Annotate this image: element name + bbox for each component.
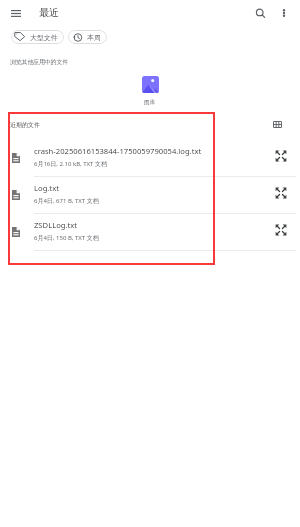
staticText: 大型文件 [30, 33, 58, 42]
button[interactable]: Search [250, 3, 270, 23]
staticText: crash-20250616153844-1750059790054.log.t… [34, 146, 234, 156]
staticText: 最近 [39, 6, 59, 19]
button[interactable]: Menu [11, 10, 21, 17]
button[interactable]: crash-20250616153844-1750059790054.log.t… [0, 140, 300, 177]
staticText: 6月16日, 2.10 kB, TXT 文档 [34, 160, 107, 168]
staticText: Log.txt [34, 183, 234, 193]
staticText: 6月4日, 150 B, TXT 文档 [34, 234, 99, 242]
button[interactable]: More options [274, 3, 294, 23]
staticText: 本周 [87, 33, 101, 42]
button[interactable]: Expand [273, 148, 289, 164]
button[interactable]: 大型文件 [11, 30, 64, 44]
staticText: ZSDLLog.txt [34, 220, 234, 230]
staticText: 图库 [144, 99, 156, 106]
button[interactable]: Log.txt [0, 177, 300, 214]
button[interactable]: 图库 [142, 76, 159, 93]
button[interactable]: Grid view [269, 116, 285, 132]
staticText: 近期的文件 [10, 121, 40, 129]
staticText: 浏览其他应用中的文件 [10, 58, 68, 65]
button[interactable]: Expand [273, 222, 289, 238]
button[interactable]: 本周 [68, 30, 107, 44]
button[interactable]: ZSDLLog.txt [0, 214, 300, 251]
staticText: 6月4日, 671 B, TXT 文档 [34, 197, 99, 205]
button[interactable]: Expand [273, 185, 289, 201]
